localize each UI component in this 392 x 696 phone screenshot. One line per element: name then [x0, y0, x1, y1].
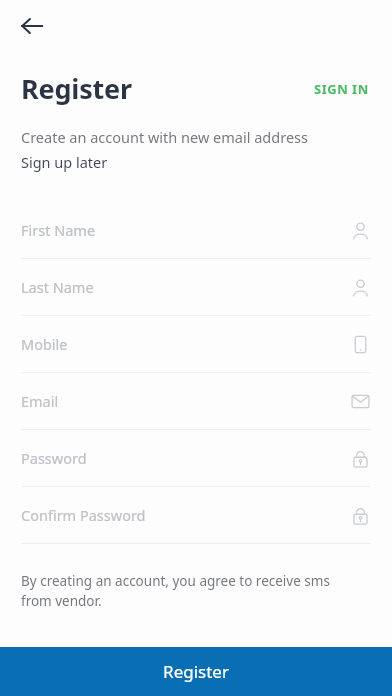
button[interactable]: Sign up later [21, 152, 108, 172]
button[interactable]: Password [0, 430, 392, 487]
button[interactable]: Last Name [0, 259, 392, 316]
staticText: Confirm Password [21, 505, 146, 525]
staticText: Last Name [21, 277, 94, 297]
button[interactable]: Register [0, 647, 392, 696]
staticText: Email [21, 391, 59, 411]
staticText: Sign up later [21, 152, 108, 172]
button[interactable]: Confirm Password [0, 487, 392, 544]
button[interactable]: Mobile [0, 316, 392, 373]
staticText: First Name [21, 220, 96, 240]
button[interactable]: SIGN IN [312, 74, 371, 104]
staticText: Create an account with new email address [21, 127, 308, 147]
staticText: Mobile [21, 334, 68, 354]
staticText: Register [21, 70, 132, 107]
staticText: Password [21, 448, 87, 468]
button[interactable]: Email [0, 373, 392, 430]
staticText: Register [163, 660, 229, 683]
button[interactable]: First Name [0, 202, 392, 259]
staticText: By creating an account, you agree to rec… [21, 572, 352, 610]
staticText: SIGN IN [314, 80, 369, 98]
button[interactable]: Back [12, 6, 52, 46]
